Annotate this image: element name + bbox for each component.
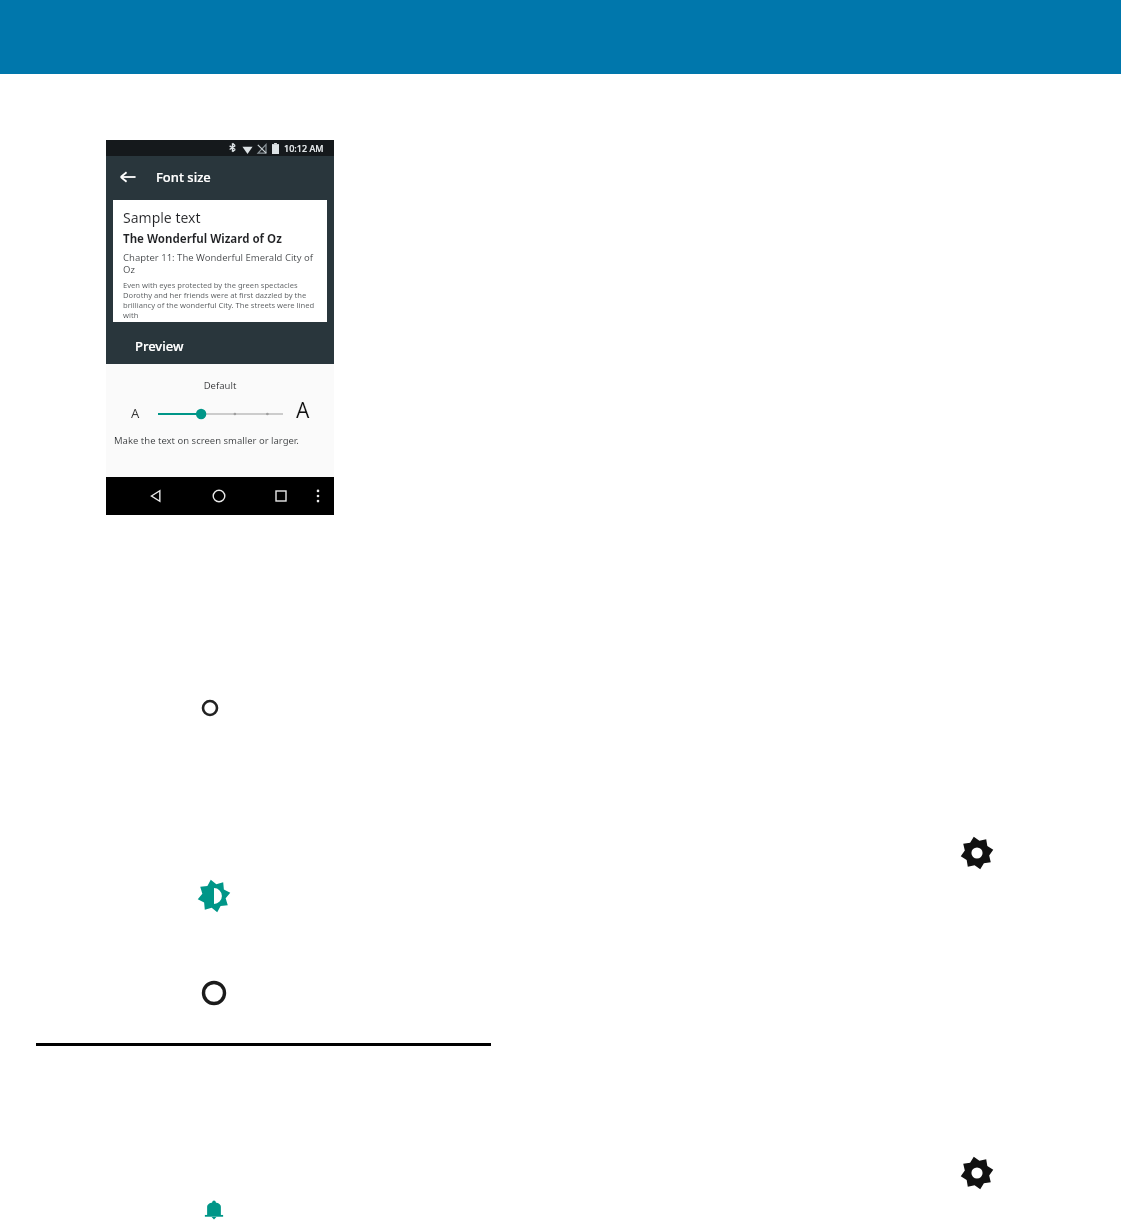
button[interactable]: Display brightness	[196, 878, 232, 914]
staticText: The Wonderful Wizard of Oz	[123, 231, 282, 247]
button[interactable]: Settings	[959, 835, 995, 871]
staticText: Make the text on screen smaller or large…	[114, 434, 314, 447]
staticText: Sample text	[123, 208, 201, 227]
staticText: Font size	[156, 168, 211, 186]
staticText: Chapter 11: The Wonderful Emerald City o…	[123, 251, 319, 276]
staticText: Default	[106, 379, 334, 392]
staticText: Preview	[135, 337, 184, 355]
button[interactable]: Step bullet	[199, 697, 221, 719]
staticText: 10:12 AM	[284, 142, 324, 154]
button[interactable]: Font size slider	[158, 404, 283, 424]
button[interactable]: Notifications	[198, 1194, 230, 1226]
button[interactable]: Home	[212, 489, 226, 503]
button[interactable]: Step bullet	[199, 978, 229, 1008]
button[interactable]: Settings	[959, 1155, 995, 1191]
button[interactable]: Sample text	[113, 200, 327, 322]
button[interactable]: More options	[314, 488, 322, 504]
button[interactable]: Back	[119, 168, 137, 186]
button[interactable]: Recent apps	[275, 490, 287, 502]
staticText: A	[296, 396, 310, 425]
button[interactable]: Back	[150, 490, 162, 502]
staticText: A	[131, 404, 140, 422]
staticText: Even with eyes protected by the green sp…	[123, 280, 319, 320]
